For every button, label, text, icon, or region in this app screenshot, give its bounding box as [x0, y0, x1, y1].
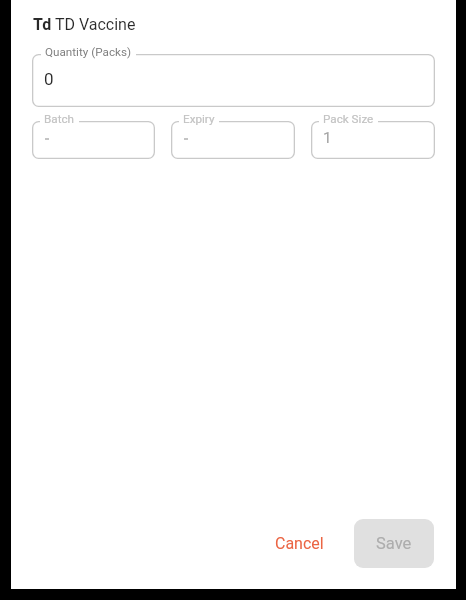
button[interactable]: Save: [354, 519, 434, 568]
staticText: Cancel: [275, 534, 324, 553]
staticText: Td TD Vaccine: [33, 15, 136, 34]
button[interactable]: Cancel: [259, 522, 340, 565]
staticText: Batch: [44, 112, 75, 126]
staticText: Quantity (Packs): [45, 45, 132, 59]
staticText: Pack Size: [323, 112, 374, 126]
staticText: Expiry: [183, 112, 215, 126]
button[interactable]: Expiry: [171, 112, 295, 159]
button[interactable]: Pack Size: [311, 112, 435, 159]
button[interactable]: Quantity (Packs): [32, 45, 435, 107]
staticText: 1: [323, 129, 332, 147]
staticText: 0: [44, 69, 54, 89]
button[interactable]: Batch: [32, 112, 155, 159]
staticText: Save: [376, 534, 412, 553]
